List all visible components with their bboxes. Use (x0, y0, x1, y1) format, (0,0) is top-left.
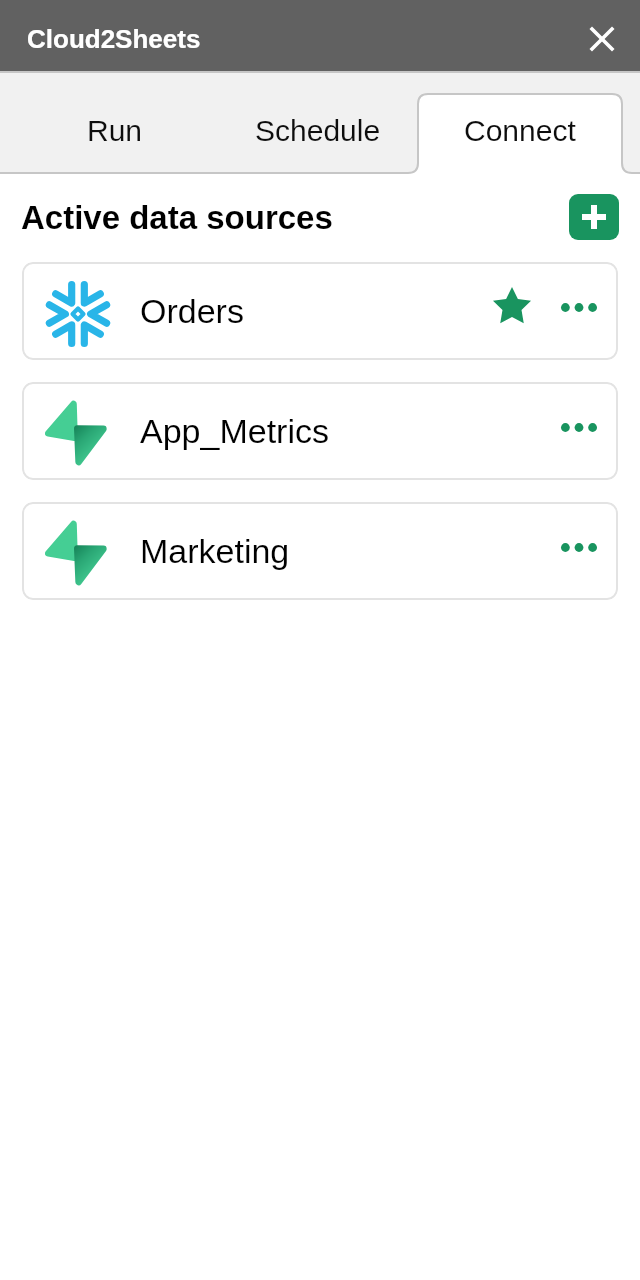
button[interactable]: Add data source (569, 194, 619, 240)
button[interactable]: Run (13, 76, 216, 173)
button[interactable]: More options (549, 281, 609, 341)
button[interactable]: Orders (22, 262, 618, 360)
staticText: Active data sources (21, 199, 333, 236)
button[interactable]: App_Metrics (22, 382, 618, 480)
button[interactable]: More options (549, 521, 609, 581)
staticText: Cloud2Sheets (27, 24, 201, 53)
button[interactable]: More options (549, 401, 609, 461)
button[interactable]: Close (574, 12, 626, 64)
staticText: Run (87, 114, 143, 148)
button[interactable]: Schedule (216, 76, 419, 173)
button[interactable]: Connect (418, 94, 622, 173)
button[interactable]: Marketing (22, 502, 618, 600)
staticText: App_Metrics (140, 412, 329, 450)
staticText: Orders (140, 292, 244, 330)
staticText: Schedule (255, 114, 381, 148)
button[interactable]: Favorite (484, 283, 540, 339)
staticText: Marketing (140, 532, 290, 570)
staticText: Connect (464, 114, 576, 148)
